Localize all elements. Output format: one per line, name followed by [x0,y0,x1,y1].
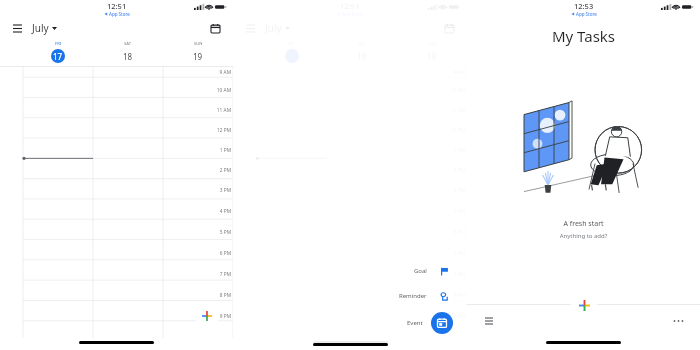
staticText: 9 PM [210,313,231,320]
staticText: 10 AM [210,87,231,94]
staticText: FRI [55,41,62,47]
button[interactable]: SAT [93,38,163,63]
staticText: 11 AM [210,107,231,114]
staticText: App Store [576,11,597,17]
staticText: 12 PM [210,127,231,134]
button[interactable]: July [32,21,57,35]
staticText: 3 PM [210,187,231,194]
button[interactable]: Event [407,312,453,334]
staticText: 17 [53,51,63,62]
staticText: 6 PM [210,250,231,257]
staticText: 12:53 [574,1,594,11]
staticText: 2 PM [210,167,231,174]
staticText: SAT [124,41,132,47]
staticText: My Tasks [467,26,700,46]
staticText: A fresh start [467,219,700,229]
staticText: Anything to add? [467,232,700,240]
staticText: July [265,21,282,35]
staticText: Goal [414,267,427,275]
button[interactable]: Today [441,20,457,36]
staticText: 19 [193,51,203,62]
button[interactable]: Goal [414,262,453,280]
staticText: Reminder [399,292,427,300]
staticText: 8 PM [444,292,465,299]
staticText: 18 [123,51,133,62]
button[interactable]: SUN [163,38,233,63]
staticText: 7 PM [444,271,465,278]
staticText: App Store [342,11,363,17]
button[interactable]: Menu [481,313,497,329]
button[interactable]: FRI [256,38,327,63]
button[interactable]: Create [195,304,219,328]
staticText: 9 PM [444,313,465,320]
staticText: 4 PM [210,208,231,215]
button[interactable]: July [265,21,290,35]
button[interactable]: Menu [10,21,24,35]
button[interactable]: Menu [243,21,257,35]
staticText: July [32,21,49,35]
staticText: 7 PM [210,271,231,278]
button[interactable]: FRI [23,38,93,63]
staticText: 18 [357,51,367,62]
button[interactable]: Add task [571,292,597,318]
button[interactable]: Today [207,20,223,36]
staticText: 19 [427,51,437,62]
button[interactable]: More options [670,313,686,329]
staticText: App Store [109,11,130,17]
staticText: 12:51 [340,1,360,11]
staticText: 8 PM [210,292,231,299]
staticText: 1 PM [210,147,231,154]
staticText: Event [407,319,423,327]
staticText: SUN [194,41,203,47]
staticText: 5 PM [210,229,231,236]
button[interactable]: Reminder [399,287,453,305]
staticText: 9 AM [210,69,231,76]
staticText: 12:51 [107,1,127,11]
